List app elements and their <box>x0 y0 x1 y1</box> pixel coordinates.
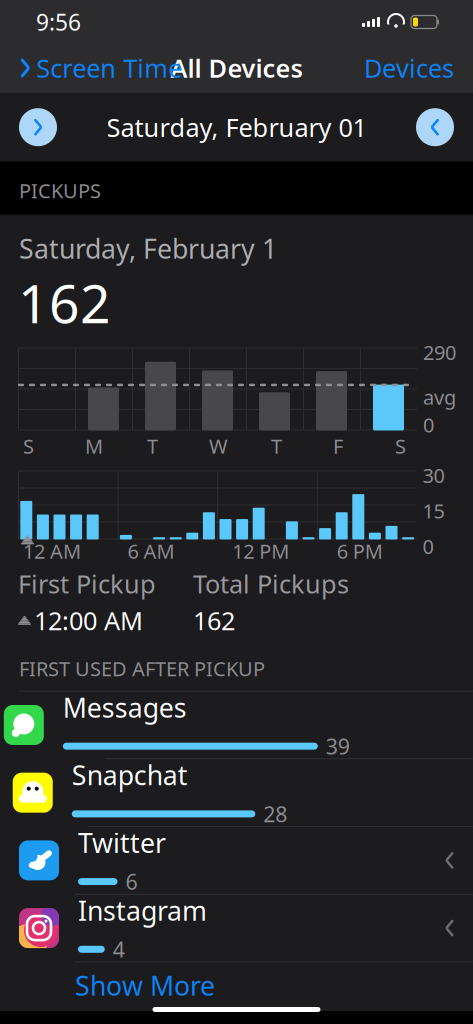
staticText: 12 PM <box>232 538 289 564</box>
staticText: 15 <box>422 497 444 524</box>
staticText: 12:00 AM <box>34 604 143 637</box>
staticText: Instagram <box>78 893 207 928</box>
staticText: F <box>333 433 343 459</box>
staticText: 0 <box>423 411 434 438</box>
staticText: First Pickup <box>18 567 156 600</box>
staticText: Show More <box>75 968 215 1003</box>
staticText: 6 PM <box>337 538 383 564</box>
staticText: Screen Time <box>36 51 182 85</box>
staticText: 30 <box>422 462 444 488</box>
button[interactable]: Previous day <box>15 104 61 150</box>
staticText: PICKUPS <box>19 177 101 204</box>
staticText: Messages <box>63 690 187 725</box>
staticText: 12 AM <box>23 538 81 564</box>
staticText: Saturday, February 01 <box>106 110 366 144</box>
staticText: M <box>85 433 103 459</box>
staticText: All Devices <box>170 51 302 85</box>
staticText: 4 <box>113 935 125 963</box>
staticText: S <box>23 433 34 459</box>
staticText: 290 <box>423 339 456 365</box>
button[interactable]: Twitter <box>0 827 473 895</box>
staticText: 162 <box>193 604 235 637</box>
staticText: 0 <box>422 533 433 560</box>
button[interactable]: Messages <box>0 691 473 759</box>
staticText: 162 <box>18 267 111 338</box>
staticText: S <box>395 433 406 459</box>
staticText: 39 <box>326 732 350 760</box>
staticText: T <box>147 433 158 459</box>
staticText: 9:56 <box>36 7 81 37</box>
staticText: Saturday, February 1 <box>19 231 277 266</box>
staticText: Total Pickups <box>193 567 349 600</box>
button[interactable]: Show More <box>0 962 473 1008</box>
staticText: avg <box>423 384 456 410</box>
button[interactable]: Screen Time <box>9 45 192 91</box>
button[interactable]: Snapchat <box>0 759 473 827</box>
staticText: T <box>271 433 282 459</box>
staticText: 28 <box>263 800 287 828</box>
staticText: FIRST USED AFTER PICKUP <box>19 655 265 682</box>
staticText: Devices <box>364 51 454 85</box>
staticText: W <box>209 433 228 459</box>
button[interactable]: Instagram <box>0 895 473 962</box>
staticText: Twitter <box>78 825 166 860</box>
staticText: 6 AM <box>128 538 175 564</box>
button[interactable]: Devices <box>354 45 464 91</box>
staticText: 6 <box>125 867 137 896</box>
button[interactable]: Next day <box>412 104 458 150</box>
staticText: Snapchat <box>72 757 188 793</box>
